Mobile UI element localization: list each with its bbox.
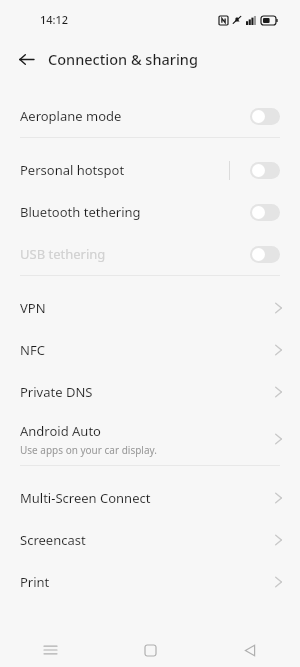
staticText: Android Auto (20, 422, 101, 440)
button[interactable]: Toggle (250, 246, 280, 263)
staticText: 14:12 (40, 12, 69, 27)
button[interactable]: Private DNS (0, 371, 300, 413)
staticText: Bluetooth tethering (20, 203, 141, 221)
staticText: Aeroplane mode (20, 107, 122, 125)
button[interactable]: Android Auto (0, 413, 300, 465)
button[interactable]: Back (200, 633, 300, 667)
staticText: Screencast (20, 531, 86, 549)
button[interactable]: Print (0, 561, 300, 603)
button[interactable]: USB tethering (0, 233, 300, 275)
staticText: Private DNS (20, 383, 93, 401)
button[interactable]: Toggle (250, 204, 280, 221)
staticText: Multi-Screen Connect (20, 489, 151, 507)
button[interactable]: Home (100, 633, 200, 667)
staticText: Print (20, 573, 50, 591)
staticText: Use apps on your car display. (20, 443, 157, 457)
staticText: USB tethering (20, 245, 106, 263)
staticText: NFC (20, 341, 45, 359)
staticText: Personal hotspot (20, 161, 125, 179)
staticText: VPN (20, 299, 46, 317)
button[interactable]: VPN (0, 287, 300, 329)
button[interactable]: Screencast (0, 519, 300, 561)
button[interactable]: Toggle (250, 108, 280, 125)
staticText: Connection & sharing (48, 49, 198, 69)
button[interactable]: Personal hotspot (0, 149, 300, 191)
button[interactable]: Recent apps (0, 633, 100, 667)
button[interactable]: Multi-Screen Connect (0, 477, 300, 519)
button[interactable]: Toggle (250, 162, 280, 179)
button[interactable]: Aeroplane mode (0, 95, 300, 137)
button[interactable]: Back (12, 45, 40, 73)
button[interactable]: NFC (0, 329, 300, 371)
button[interactable]: Bluetooth tethering (0, 191, 300, 233)
